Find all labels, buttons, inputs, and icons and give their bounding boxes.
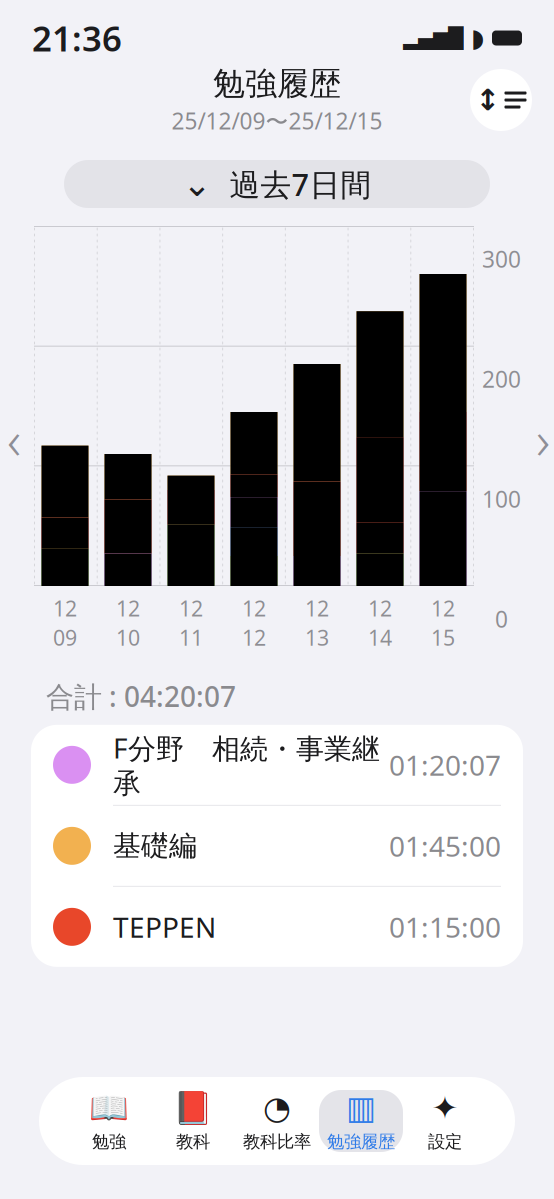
staticText: ▂▄▆█	[403, 27, 463, 49]
staticText: ↕	[475, 83, 500, 117]
staticText: 200	[482, 364, 521, 394]
staticText: 12	[242, 623, 266, 652]
button[interactable]: ◔	[235, 1090, 319, 1152]
staticText: 📖	[89, 1090, 129, 1126]
staticText: 14	[368, 623, 392, 652]
staticText: 300	[482, 244, 521, 274]
staticText: ‹	[7, 403, 21, 474]
staticText: 01:20:07	[389, 746, 501, 783]
staticText: ▥	[346, 1090, 376, 1126]
button[interactable]: ⌄	[64, 160, 490, 208]
staticText: 基礎編	[113, 829, 197, 863]
staticText: ›	[536, 403, 550, 474]
staticText: 教科	[176, 1131, 210, 1152]
button[interactable]: F分野 相続・事業継承	[31, 725, 523, 805]
staticText: 過去7日間	[229, 164, 371, 204]
staticText: 12	[116, 594, 140, 622]
staticText: 01:45:00	[389, 827, 501, 864]
button[interactable]: 並べ替え	[470, 69, 532, 131]
staticText: 12	[242, 594, 266, 622]
staticText: 15	[431, 623, 455, 652]
staticText: 設定	[428, 1131, 462, 1152]
staticText: 25/12/09〜25/12/15	[171, 105, 382, 136]
staticText: 0	[495, 604, 508, 634]
staticText: 12	[368, 594, 392, 622]
staticText: 合計 : 04:20:07	[46, 678, 236, 715]
button[interactable]: ✦	[403, 1090, 487, 1152]
staticText: 10	[116, 623, 140, 652]
staticText: 100	[482, 484, 521, 514]
staticText: ✦	[431, 1090, 458, 1126]
staticText: 12	[305, 594, 329, 622]
staticText: 勉強履歴	[327, 1131, 395, 1152]
staticText: ⌄	[182, 164, 211, 204]
staticText: TEPPEN	[113, 908, 216, 945]
staticText: 01:15:00	[389, 908, 501, 945]
button[interactable]: 📖	[67, 1090, 151, 1152]
staticText: 勉強履歴	[213, 64, 341, 103]
staticText: 12	[53, 594, 77, 622]
button[interactable]: ▥	[319, 1090, 403, 1152]
button[interactable]: 📕	[151, 1090, 235, 1152]
staticText: 21:36	[32, 15, 122, 61]
staticText: 教科比率	[243, 1131, 311, 1152]
staticText: 📕	[173, 1090, 213, 1126]
button[interactable]: 基礎編	[31, 806, 523, 886]
staticText: ◔	[263, 1090, 291, 1126]
staticText: ◗	[471, 24, 484, 52]
staticText: 09	[53, 623, 77, 652]
staticText: 11	[179, 623, 203, 652]
staticText: 12	[179, 594, 203, 622]
staticText: 12	[431, 594, 455, 622]
staticText: F分野 相続・事業継承	[113, 729, 380, 801]
staticText: 勉強	[92, 1131, 126, 1152]
button[interactable]: TEPPEN	[31, 887, 523, 967]
staticText: 13	[305, 623, 329, 652]
